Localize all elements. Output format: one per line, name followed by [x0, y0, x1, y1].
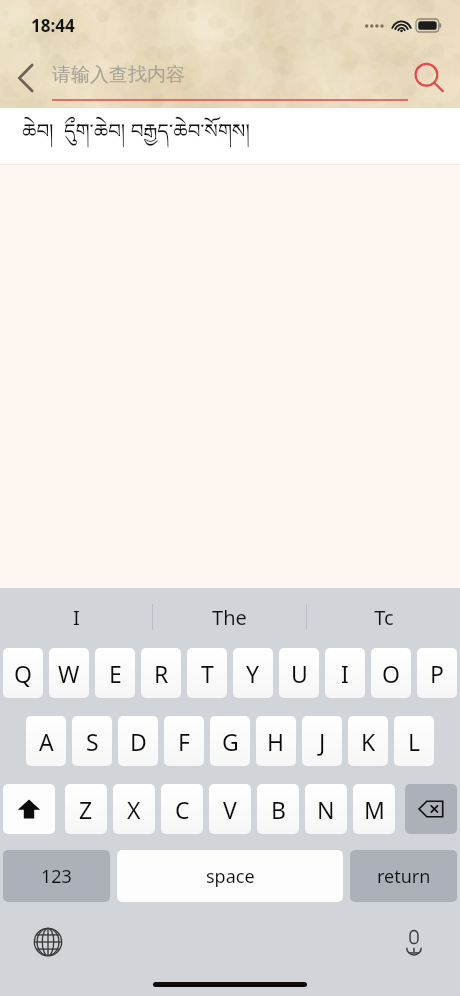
button[interactable]: Search	[406, 55, 452, 101]
button[interactable]: F	[164, 716, 204, 766]
button[interactable]: return	[350, 850, 457, 902]
staticText: D	[130, 726, 147, 757]
button[interactable]: H	[256, 716, 296, 766]
button[interactable]: J	[302, 716, 342, 766]
button[interactable]: 123	[3, 850, 110, 902]
button[interactable]: I	[0, 588, 152, 646]
button[interactable]: G	[210, 716, 250, 766]
button[interactable]: R	[141, 648, 181, 698]
button[interactable]: M	[353, 784, 395, 834]
staticText: space	[206, 864, 255, 889]
staticText: Z	[79, 794, 93, 825]
button[interactable]: V	[209, 784, 251, 834]
button[interactable]: 请输入查找内容	[52, 55, 408, 101]
button[interactable]: Tc	[307, 588, 460, 646]
button[interactable]: N	[305, 784, 347, 834]
staticText: I	[73, 604, 80, 631]
staticText: L	[408, 726, 421, 757]
button[interactable]: I	[325, 648, 365, 698]
button[interactable]: W	[49, 648, 89, 698]
staticText: V	[223, 794, 237, 825]
button[interactable]: K	[348, 716, 388, 766]
button[interactable]: D	[118, 716, 158, 766]
button[interactable]: P	[417, 648, 457, 698]
button[interactable]: S	[72, 716, 112, 766]
staticText: F	[178, 726, 190, 757]
staticText: S	[86, 726, 99, 757]
button[interactable]: Y	[233, 648, 273, 698]
staticText: ཆེབ། ྀདུག་ཆེབ། བརྒྱད་ཆེབ་སོགས།	[22, 109, 250, 165]
staticText: I	[341, 658, 349, 689]
staticText: A	[39, 726, 54, 757]
button[interactable]: Shift	[3, 784, 55, 834]
staticText: N	[317, 794, 335, 825]
button[interactable]: U	[279, 648, 319, 698]
button[interactable]: Back	[4, 56, 48, 100]
button[interactable]: Backspace	[405, 784, 457, 834]
staticText: X	[127, 794, 141, 825]
button[interactable]: B	[257, 784, 299, 834]
staticText: return	[377, 864, 431, 889]
button[interactable]: ཆེབ། ྀདུག་ཆེབ། བརྒྱད་ཆེབ་སོགས།	[0, 108, 460, 165]
button[interactable]: A	[26, 716, 66, 766]
staticText: U	[291, 658, 308, 689]
staticText: R	[154, 658, 169, 689]
button[interactable]: space	[117, 850, 343, 902]
button[interactable]: The	[153, 588, 306, 646]
staticText: W	[58, 658, 80, 689]
button[interactable]: T	[187, 648, 227, 698]
button[interactable]: O	[371, 648, 411, 698]
button[interactable]: C	[161, 784, 203, 834]
button[interactable]: Q	[3, 648, 43, 698]
staticText: E	[109, 658, 122, 689]
staticText: G	[222, 726, 239, 757]
button[interactable]: E	[95, 648, 135, 698]
staticText: P	[430, 658, 444, 689]
staticText: Y	[246, 658, 260, 689]
staticText: Q	[14, 658, 32, 689]
button[interactable]: Dictation	[392, 920, 436, 964]
button[interactable]: Change keyboard	[26, 920, 70, 964]
staticText: 18:44	[31, 14, 75, 37]
staticText: T	[201, 658, 214, 689]
staticText: K	[361, 726, 376, 757]
staticText: O	[382, 658, 400, 689]
staticText: J	[319, 726, 326, 757]
staticText: The	[212, 604, 247, 631]
staticText: C	[175, 794, 190, 825]
staticText: 请输入查找内容	[52, 63, 185, 87]
staticText: 123	[41, 864, 72, 889]
button[interactable]: X	[113, 784, 155, 834]
staticText: M	[364, 794, 385, 825]
staticText: H	[267, 726, 285, 757]
button[interactable]: L	[394, 716, 434, 766]
staticText: B	[271, 794, 286, 825]
button[interactable]: Z	[65, 784, 107, 834]
staticText: Tc	[374, 604, 394, 631]
